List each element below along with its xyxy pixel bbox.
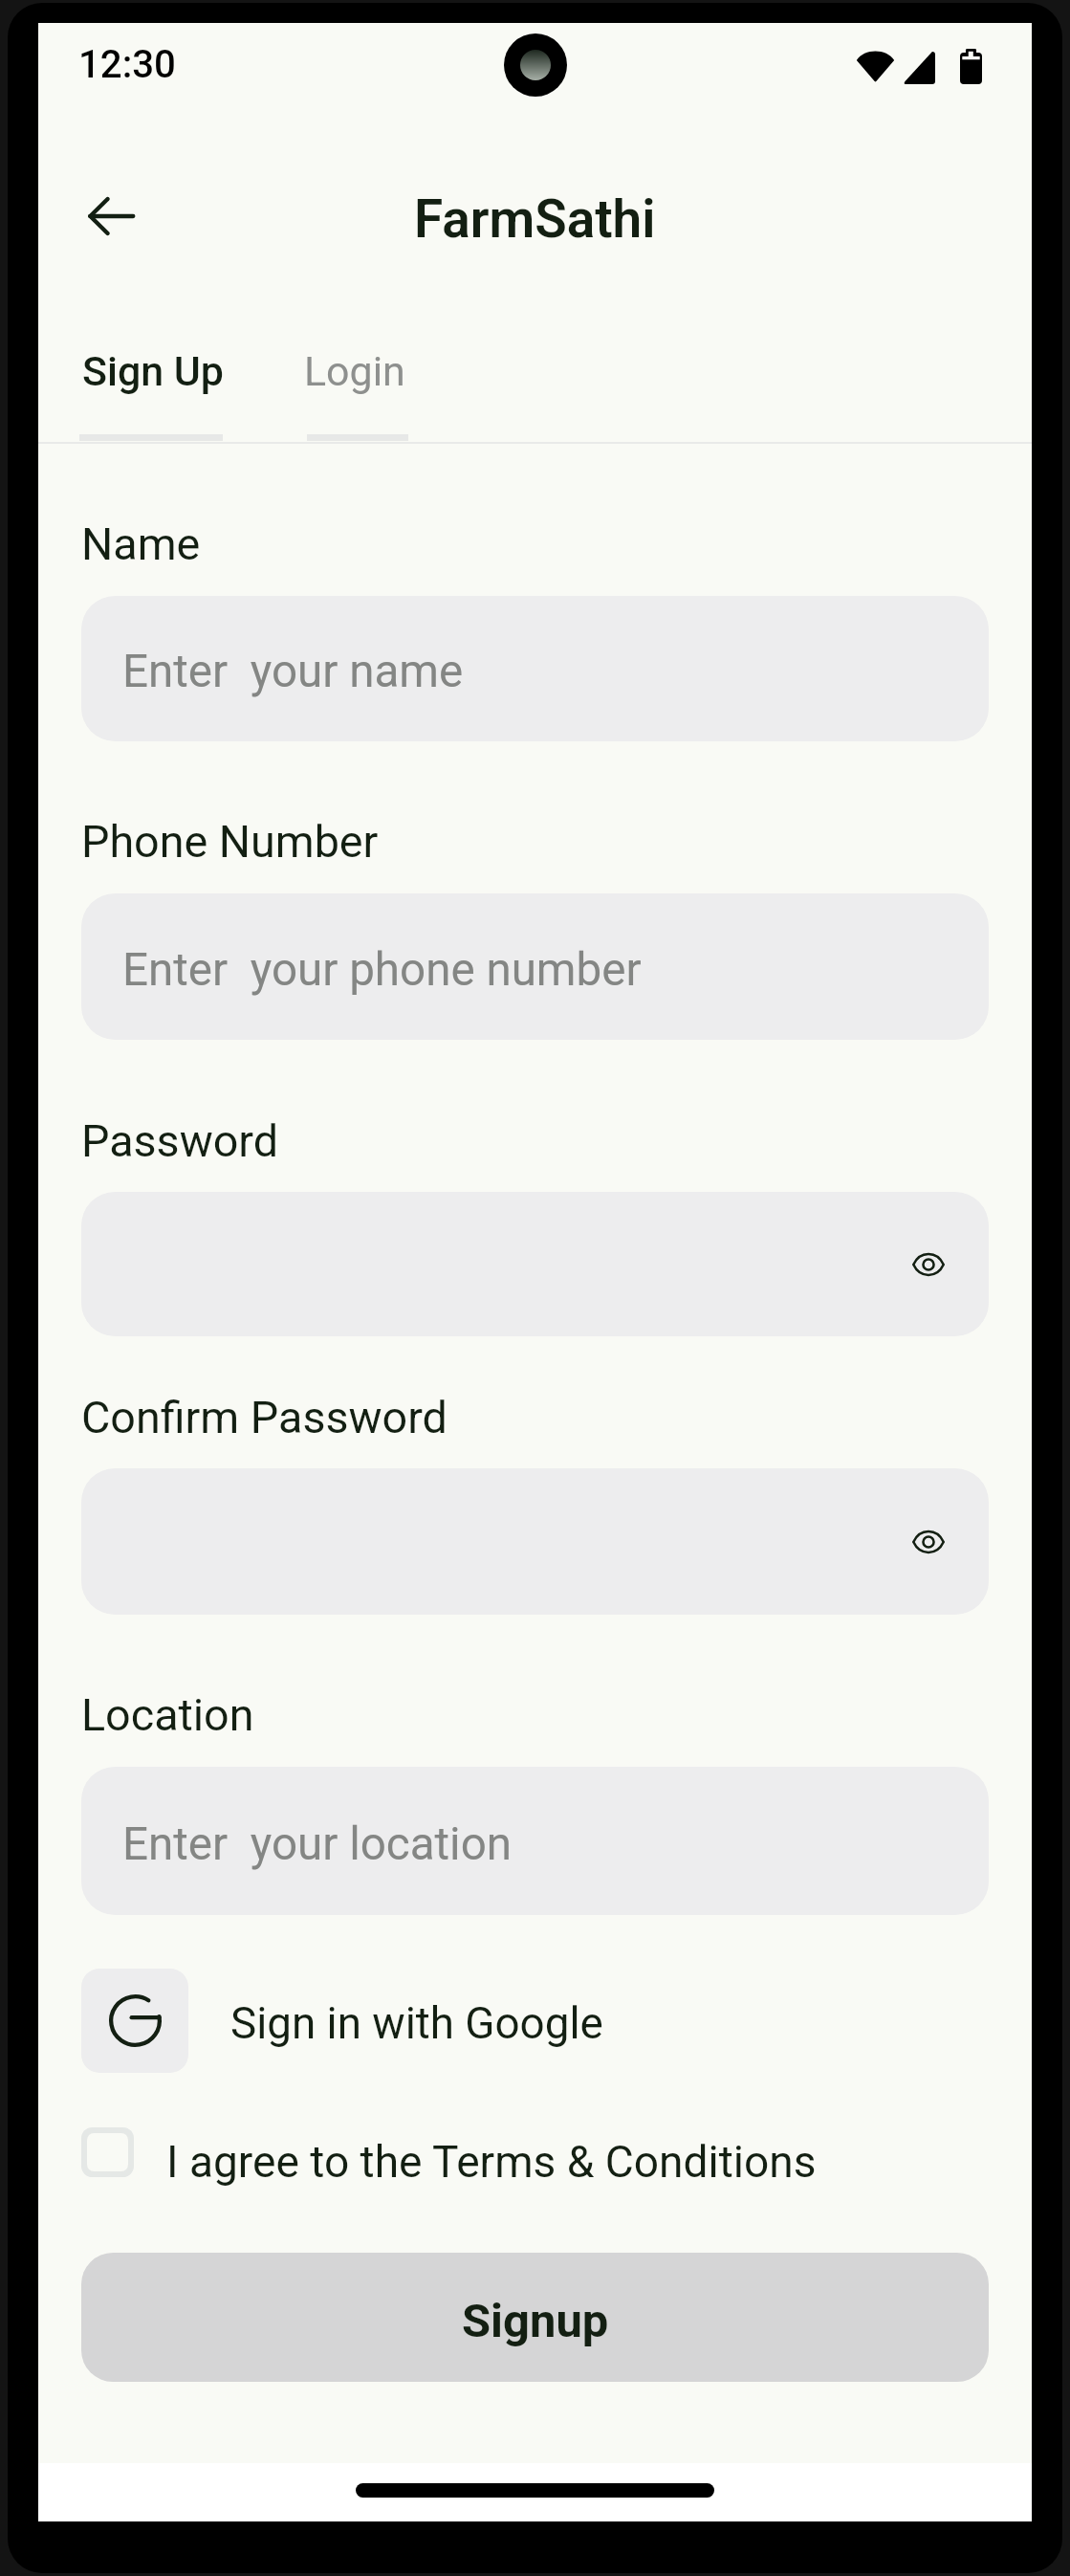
- button[interactable]: Enter your location: [81, 1767, 989, 1915]
- staticText: Enter your phone number: [122, 943, 642, 997]
- staticText: Password: [81, 1115, 279, 1168]
- button[interactable]: Signup: [81, 2253, 989, 2382]
- staticText: Name: [81, 518, 201, 571]
- button[interactable]: Sign in with Google: [38, 1969, 1032, 2073]
- staticText: I agree to the Terms & Conditions: [166, 2136, 817, 2186]
- button[interactable]: Back: [70, 174, 153, 257]
- staticText: Confirm Password: [81, 1392, 448, 1444]
- button[interactable]: Show password: [897, 1233, 960, 1296]
- button[interactable]: Enter your name: [81, 596, 989, 741]
- button[interactable]: Sign Up: [81, 323, 225, 418]
- button[interactable]: I agree to the Terms & Conditions: [38, 2127, 1032, 2177]
- staticText: FarmSathi: [414, 188, 656, 250]
- staticText: Sign in with Google: [230, 1998, 603, 2050]
- button[interactable]: Login: [304, 323, 405, 418]
- staticText: Enter your location: [122, 1817, 513, 1871]
- staticText: Signup: [462, 2294, 609, 2348]
- staticText: Enter your name: [122, 645, 464, 698]
- button[interactable]: Enter your phone number: [81, 893, 989, 1040]
- button[interactable]: Show password: [897, 1510, 960, 1574]
- staticText: Phone Number: [81, 816, 379, 869]
- staticText: Sign Up: [82, 347, 224, 395]
- button[interactable]: Show password: [81, 1192, 989, 1336]
- staticText: Location: [81, 1689, 254, 1742]
- button[interactable]: Show password: [81, 1468, 989, 1615]
- staticText: Login: [304, 347, 405, 395]
- staticText: 12:30: [78, 42, 176, 87]
